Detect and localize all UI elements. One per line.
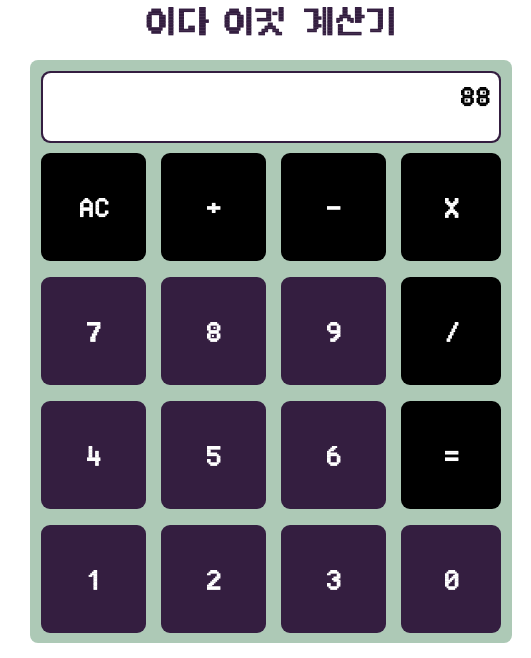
button[interactable]: 1 [41,525,146,633]
button[interactable]: 3 [281,525,386,633]
button[interactable]: - [281,153,386,261]
button[interactable]: AC [41,153,146,261]
button[interactable]: = [401,401,501,509]
button[interactable]: X [401,153,501,261]
button[interactable]: 6 [281,401,386,509]
button[interactable]: 5 [161,401,266,509]
button[interactable]: 8 [161,277,266,385]
button[interactable]: + [161,153,266,261]
button[interactable]: 4 [41,401,146,509]
button[interactable]: 9 [281,277,386,385]
button[interactable]: / [401,277,501,385]
button[interactable]: 0 [401,525,501,633]
button[interactable]: 7 [41,277,146,385]
button[interactable]: 2 [161,525,266,633]
